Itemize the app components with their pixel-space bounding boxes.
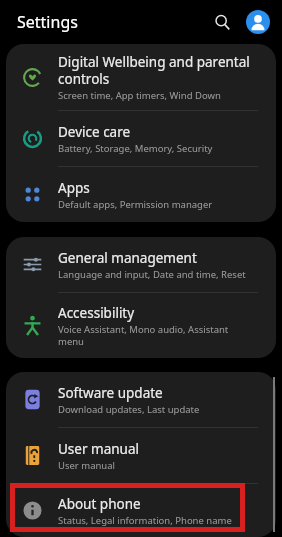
staticText: Digital Wellbeing and parental controls (58, 53, 250, 88)
button[interactable]: Software update (6, 372, 276, 427)
button[interactable]: Account (245, 9, 271, 35)
staticText: Battery, Storage, Memory, Security (58, 142, 213, 155)
staticText: Software update (58, 384, 163, 402)
staticText: Voice Assistant, Mono audio, Assistant m… (58, 323, 229, 348)
staticText: Default apps, Permission manager (58, 198, 213, 211)
button[interactable]: About phone (6, 484, 276, 537)
button[interactable]: Device care (6, 111, 276, 166)
button[interactable]: Apps (6, 167, 276, 222)
staticText: Settings (17, 11, 78, 33)
staticText: Device care (58, 123, 131, 141)
staticText: About phone (58, 495, 141, 513)
button[interactable]: Accessibility (6, 293, 276, 358)
button[interactable]: User manual (6, 428, 276, 483)
staticText: User manual (58, 440, 139, 458)
staticText: User manual (58, 459, 115, 472)
staticText: Apps (58, 179, 90, 197)
staticText: Download updates, Last update (58, 403, 200, 416)
staticText: Language and input, Date and time, Reset (58, 268, 246, 281)
staticText: Screen time, App timers, Wind Down (58, 89, 221, 102)
staticText: Status, Legal information, Phone name (58, 514, 232, 527)
button[interactable]: General management (6, 237, 276, 292)
button[interactable]: Search (207, 7, 237, 37)
staticText: General management (58, 249, 197, 267)
staticText: Accessibility (58, 304, 135, 322)
button[interactable]: Digital Wellbeing and parental controls (6, 44, 276, 110)
